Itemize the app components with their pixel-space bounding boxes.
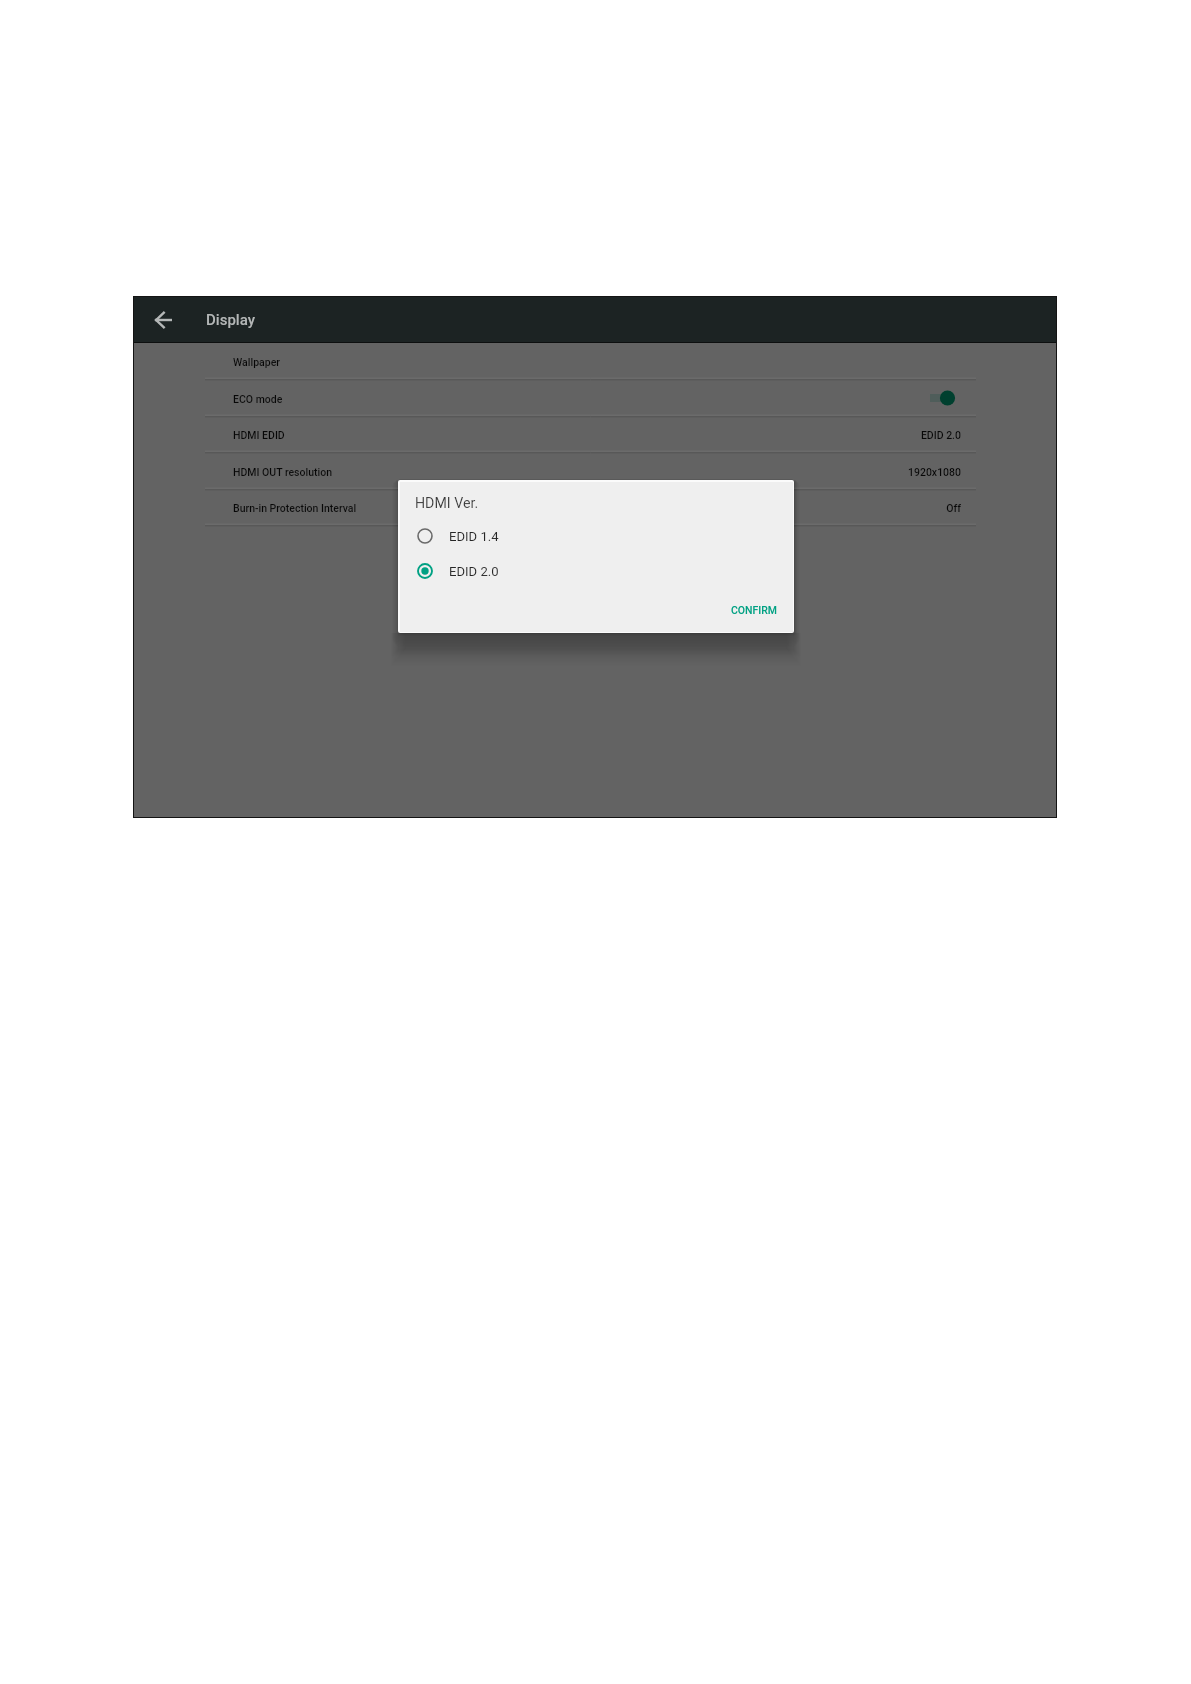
staticText: Wallpaper xyxy=(233,356,280,368)
staticText: Off xyxy=(946,502,961,514)
staticText: EDID 1.4 xyxy=(449,529,499,544)
button[interactable]: ECO mode xyxy=(134,380,1056,417)
staticText: HDMI OUT resolution xyxy=(233,466,333,478)
staticText: HDMI Ver. xyxy=(415,495,479,512)
button[interactable]: HDMI OUT resolution xyxy=(134,453,1056,490)
button[interactable]: Burn-in Protection Interval xyxy=(134,489,1056,526)
staticText: EDID 2.0 xyxy=(449,564,499,579)
button[interactable]: ECO mode switch xyxy=(924,388,958,410)
button[interactable]: EDID 2.0 xyxy=(406,554,786,588)
staticText: Burn-in Protection Interval xyxy=(233,502,357,514)
staticText: 1920x1080 xyxy=(907,466,961,478)
staticText: ECO mode xyxy=(233,393,283,405)
button[interactable]: HDMI EDID xyxy=(134,416,1056,453)
button[interactable]: EDID 1.4 xyxy=(406,519,786,553)
button[interactable]: Wallpaper xyxy=(134,343,1056,380)
staticText: Display xyxy=(206,311,255,329)
staticText: EDID 2.0 xyxy=(920,429,961,441)
button[interactable]: Back xyxy=(146,297,182,343)
staticText: CONFIRM xyxy=(731,604,778,616)
button[interactable]: CONFIRM xyxy=(722,597,786,623)
staticText: HDMI EDID xyxy=(233,429,285,441)
